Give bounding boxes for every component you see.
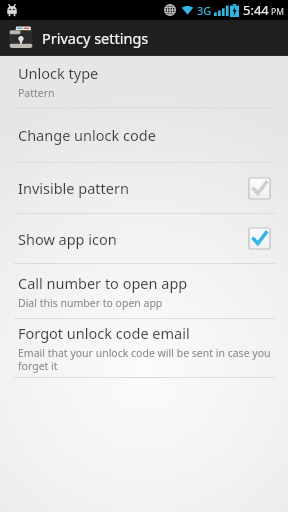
staticText: Call number to open app [18, 273, 188, 293]
button[interactable]: Unlock type [0, 56, 288, 107]
staticText: Unlock type [18, 63, 99, 83]
staticText: Email that your unlock code will be sent… [18, 346, 276, 373]
button[interactable]: Unchecked [249, 178, 270, 199]
staticText: 3G [197, 3, 212, 18]
button[interactable]: Privacy settings [0, 20, 288, 55]
button[interactable]: Call number to open app [0, 264, 288, 318]
button[interactable]: Checked [249, 228, 270, 249]
staticText: Privacy settings [42, 28, 149, 48]
button[interactable]: Invisible pattern [0, 163, 288, 213]
staticText: 5:44 [243, 1, 269, 19]
staticText: Forgot unlock code email [18, 323, 190, 343]
staticText: PM [271, 6, 284, 18]
staticText: Invisible pattern [18, 178, 129, 198]
staticText: Change unlock code [18, 125, 156, 145]
staticText: Show app icon [18, 229, 117, 249]
button[interactable]: Forgot unlock code email [0, 319, 288, 377]
staticText: Dial this number to open app [18, 296, 163, 310]
staticText: Pattern [18, 86, 55, 100]
button[interactable]: Change unlock code [0, 108, 288, 162]
button[interactable]: Show app icon [0, 214, 288, 263]
